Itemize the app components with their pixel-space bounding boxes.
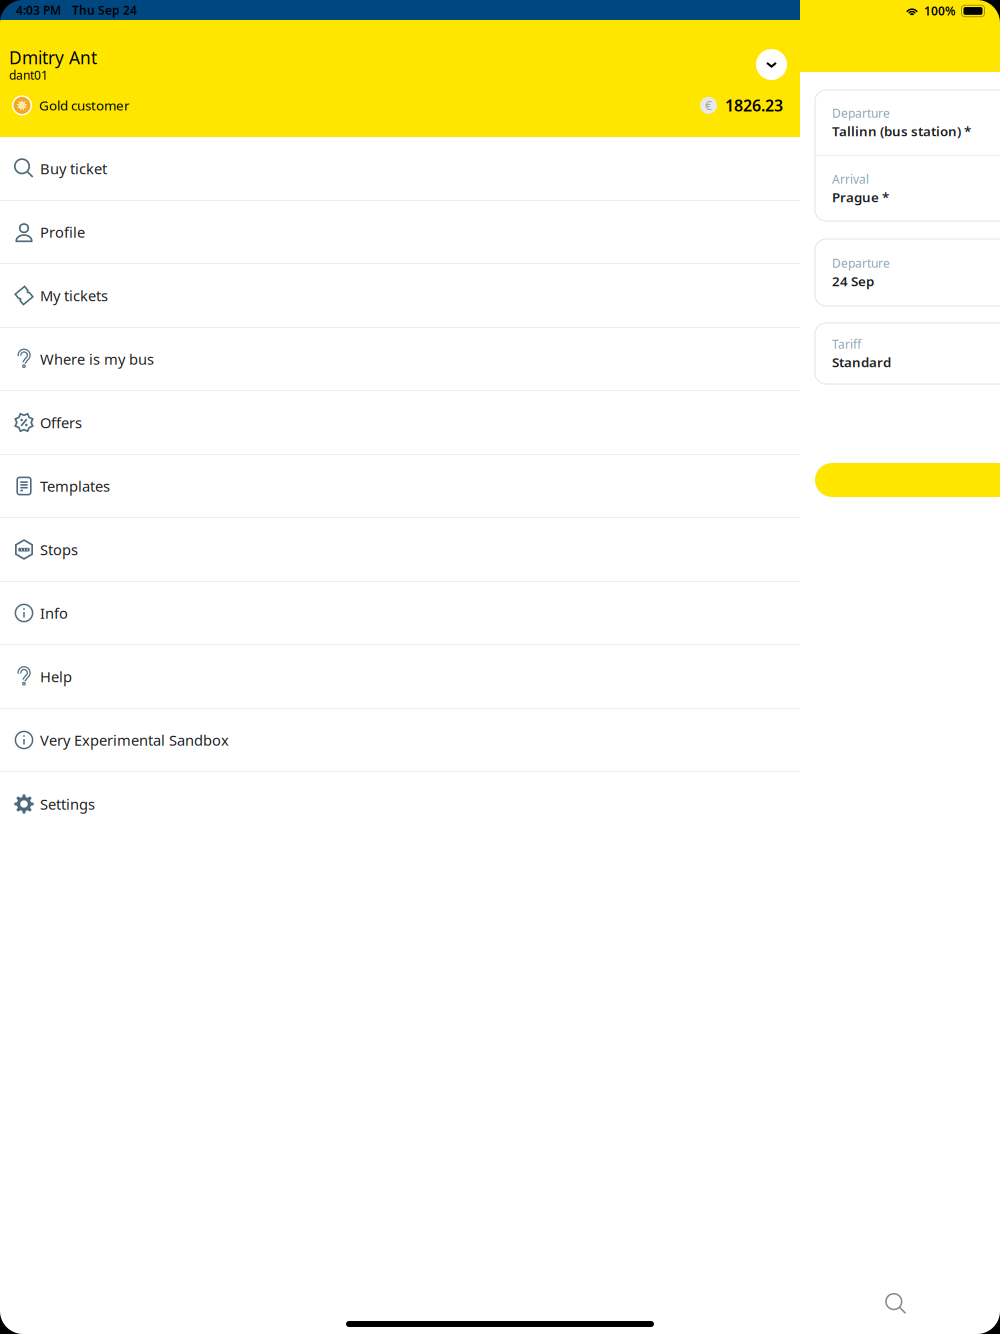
staticText: Prague *: [832, 188, 889, 206]
staticText: Thu Sep 24: [72, 2, 137, 18]
button[interactable]: My tickets: [0, 264, 800, 327]
button[interactable]: Account options: [756, 49, 787, 80]
staticText: Standard: [832, 353, 891, 371]
staticText: 24 Sep: [832, 272, 874, 290]
button[interactable]: Buy ticket: [0, 137, 800, 200]
button[interactable]: Arrival: [815, 156, 1000, 221]
staticText: Departure: [832, 105, 890, 121]
staticText: dant01: [9, 67, 48, 83]
button[interactable]: Departure: [815, 239, 1000, 306]
staticText: 4:03 PM: [16, 2, 61, 18]
staticText: Buy ticket: [40, 159, 107, 178]
staticText: Tallinn (bus station) *: [832, 122, 971, 140]
staticText: Help: [40, 667, 72, 686]
staticText: Tariff: [832, 336, 861, 352]
staticText: Stops: [40, 540, 78, 559]
button[interactable]: Profile: [0, 201, 800, 263]
button[interactable]: Info: [0, 582, 800, 644]
staticText: Settings: [40, 794, 95, 814]
staticText: 1826.23: [725, 95, 783, 116]
button[interactable]: Settings: [0, 772, 800, 836]
button[interactable]: Help: [0, 645, 800, 708]
button[interactable]: Templates: [0, 455, 800, 517]
button[interactable]: Departure: [815, 90, 1000, 155]
staticText: Profile: [40, 222, 85, 242]
staticText: €: [705, 97, 712, 113]
button[interactable]: Where is my bus: [0, 328, 800, 390]
staticText: Gold customer: [39, 96, 130, 114]
staticText: Where is my bus: [40, 349, 154, 369]
staticText: Dmitry Ant: [9, 46, 97, 69]
button[interactable]: Offers: [0, 391, 800, 454]
staticText: Info: [40, 603, 68, 623]
staticText: Very Experimental Sandbox: [40, 730, 229, 750]
staticText: Arrival: [832, 171, 869, 187]
button[interactable]: Stops: [0, 518, 800, 581]
button[interactable]: Search journeys: [815, 463, 1000, 497]
button[interactable]: Very Experimental Sandbox: [0, 709, 800, 771]
staticText: Templates: [40, 476, 110, 496]
staticText: Offers: [40, 413, 82, 432]
staticText: My tickets: [40, 286, 108, 305]
button[interactable]: Search: [884, 1292, 908, 1316]
staticText: Departure: [832, 255, 890, 271]
staticText: 100%: [924, 3, 956, 19]
button[interactable]: Tariff: [815, 323, 1000, 384]
